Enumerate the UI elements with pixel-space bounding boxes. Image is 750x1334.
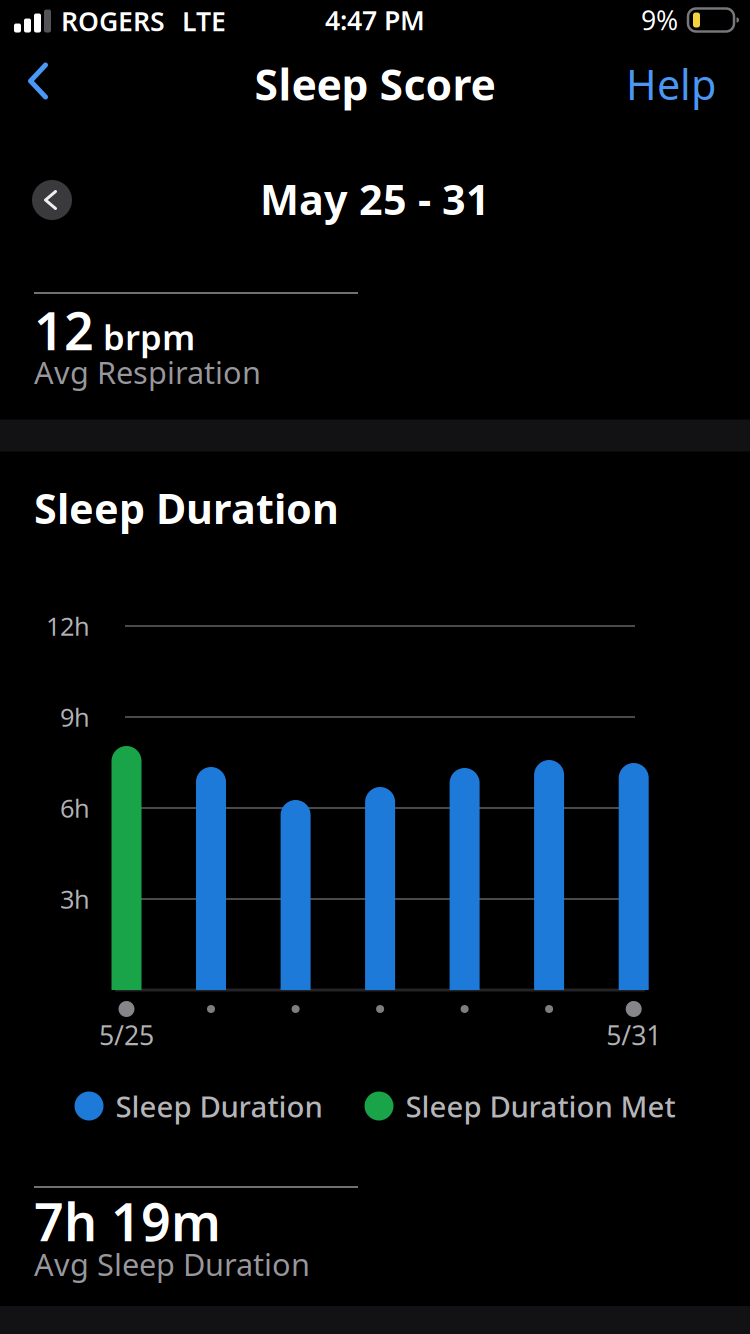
staticText: Sleep Duration Met (405, 1086, 675, 1125)
staticText: 9% (641, 2, 678, 38)
staticText: Avg Respiration (34, 352, 261, 392)
staticText: 4:47 PM (325, 2, 425, 38)
staticText: 5/25 (99, 1017, 154, 1053)
staticText: LTE (182, 3, 226, 39)
staticText: 6h (60, 791, 90, 825)
staticText: Sleep Duration (34, 481, 339, 535)
staticText: May 25 - 31 (260, 172, 490, 226)
staticText: Avg Sleep Duration (34, 1244, 310, 1284)
button[interactable]: Back (8, 46, 68, 116)
staticText: Sleep Duration (115, 1086, 322, 1125)
staticText: 3h (60, 882, 90, 916)
button[interactable]: Help (606, 49, 716, 119)
staticText: 12h (46, 609, 90, 643)
staticText: Help (626, 57, 716, 111)
staticText: ROGERS (61, 3, 165, 39)
staticText: brpm (103, 314, 195, 360)
button[interactable]: Previous week (32, 180, 72, 220)
staticText: Sleep Score (254, 56, 495, 112)
staticText: 5/31 (606, 1017, 661, 1053)
staticText: 12 (34, 295, 94, 365)
staticText: 9h (60, 700, 90, 734)
staticText: 7h 19m (34, 1186, 221, 1256)
